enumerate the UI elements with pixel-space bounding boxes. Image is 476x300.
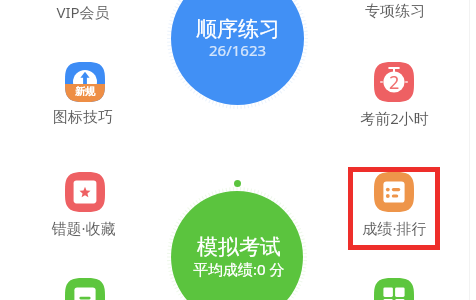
staticText: 考前2小时 xyxy=(360,108,429,128)
staticText: 模拟考试 xyxy=(197,234,281,260)
staticText: 平均成绩:0 分 xyxy=(193,259,285,279)
staticText: 顺序练习 xyxy=(196,16,280,42)
button[interactable]: 成绩排行 xyxy=(348,167,440,250)
button[interactable]: 模拟考试 xyxy=(171,191,303,300)
button[interactable]: 成绩·排行 xyxy=(347,172,441,238)
staticText: 2 xyxy=(389,70,400,95)
staticText: 新规 xyxy=(75,85,95,98)
button[interactable]: 新规 xyxy=(38,62,132,127)
staticText: 26/1623 xyxy=(209,40,267,60)
staticText: 图标技巧 xyxy=(53,108,113,127)
staticText: VIP会员 xyxy=(38,2,128,22)
button[interactable]: 练习 xyxy=(65,278,105,300)
button[interactable]: 2 xyxy=(347,62,441,128)
button[interactable]: 更多 xyxy=(374,278,414,300)
staticText: 专项练习 xyxy=(350,2,440,21)
button[interactable]: 错题·收藏 xyxy=(38,172,132,238)
staticText: 成绩·排行 xyxy=(362,218,427,238)
button[interactable]: 顺序练习 xyxy=(171,0,304,105)
staticText: 错题·收藏 xyxy=(51,218,116,238)
